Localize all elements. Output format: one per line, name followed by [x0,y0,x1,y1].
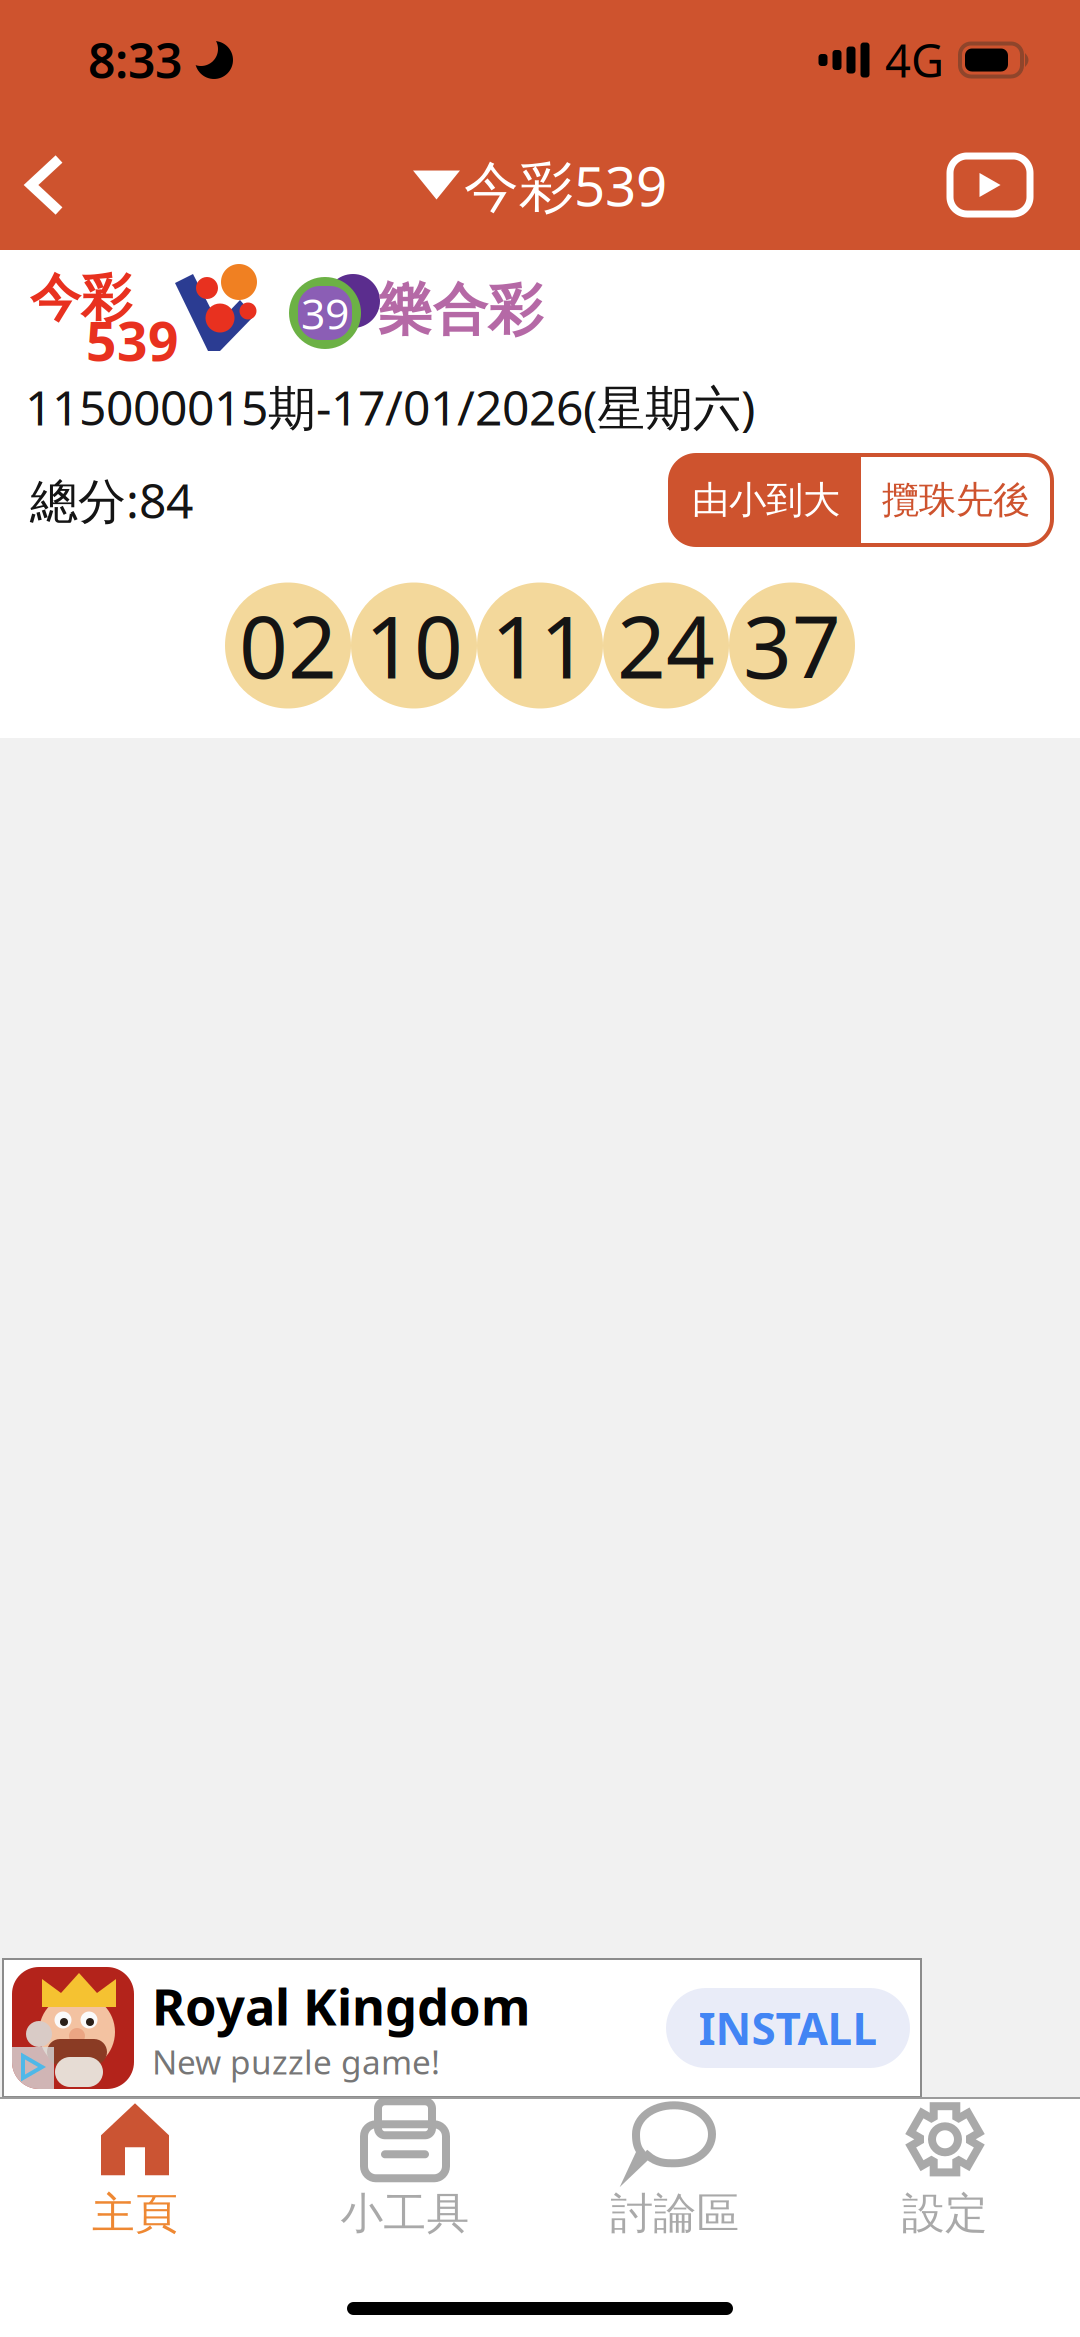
staticText: 攬珠先後 [882,477,1030,523]
staticText: 樂合彩 [378,276,543,343]
button[interactable]: Videos [940,120,1080,250]
staticText: 由小到大 [692,477,840,523]
staticText: New puzzle game! [152,2039,440,2084]
staticText: 8:33 [88,28,182,92]
staticText: 115000015期-17/01/2026(星期六) [25,375,755,439]
button[interactable]: 討論區 [540,2093,810,2254]
staticText: Royal Kingdom [152,1972,530,2039]
button[interactable]: 小工具 [270,2093,540,2254]
staticText: INSTALL [698,1999,877,2057]
staticText: 02 [239,589,337,702]
staticText: 539 [86,305,179,376]
button[interactable]: 由小到大 [671,455,861,545]
staticText: 10 [365,589,463,702]
button[interactable]: 設定 [810,2093,1080,2254]
staticText: 今彩 [30,267,132,329]
staticText: 24 [617,589,715,702]
staticText: 小工具 [340,2187,469,2240]
staticText: 總分:84 [30,468,193,532]
button[interactable]: 攬珠先後 [861,455,1051,545]
staticText: 今彩539 [464,149,667,221]
staticText: 設定 [902,2187,988,2240]
button[interactable]: 主頁 [0,2093,270,2254]
button[interactable]: Royal Kingdom [0,1959,1080,2097]
button[interactable]: Back [0,120,120,250]
staticText: 39 [301,285,349,341]
staticText: 4G [885,30,944,90]
staticText: 37 [743,589,841,702]
staticText: 主頁 [92,2187,178,2240]
button[interactable]: 今彩539 [395,129,685,241]
staticText: 討論區 [610,2187,739,2240]
staticText: 11 [491,589,589,702]
